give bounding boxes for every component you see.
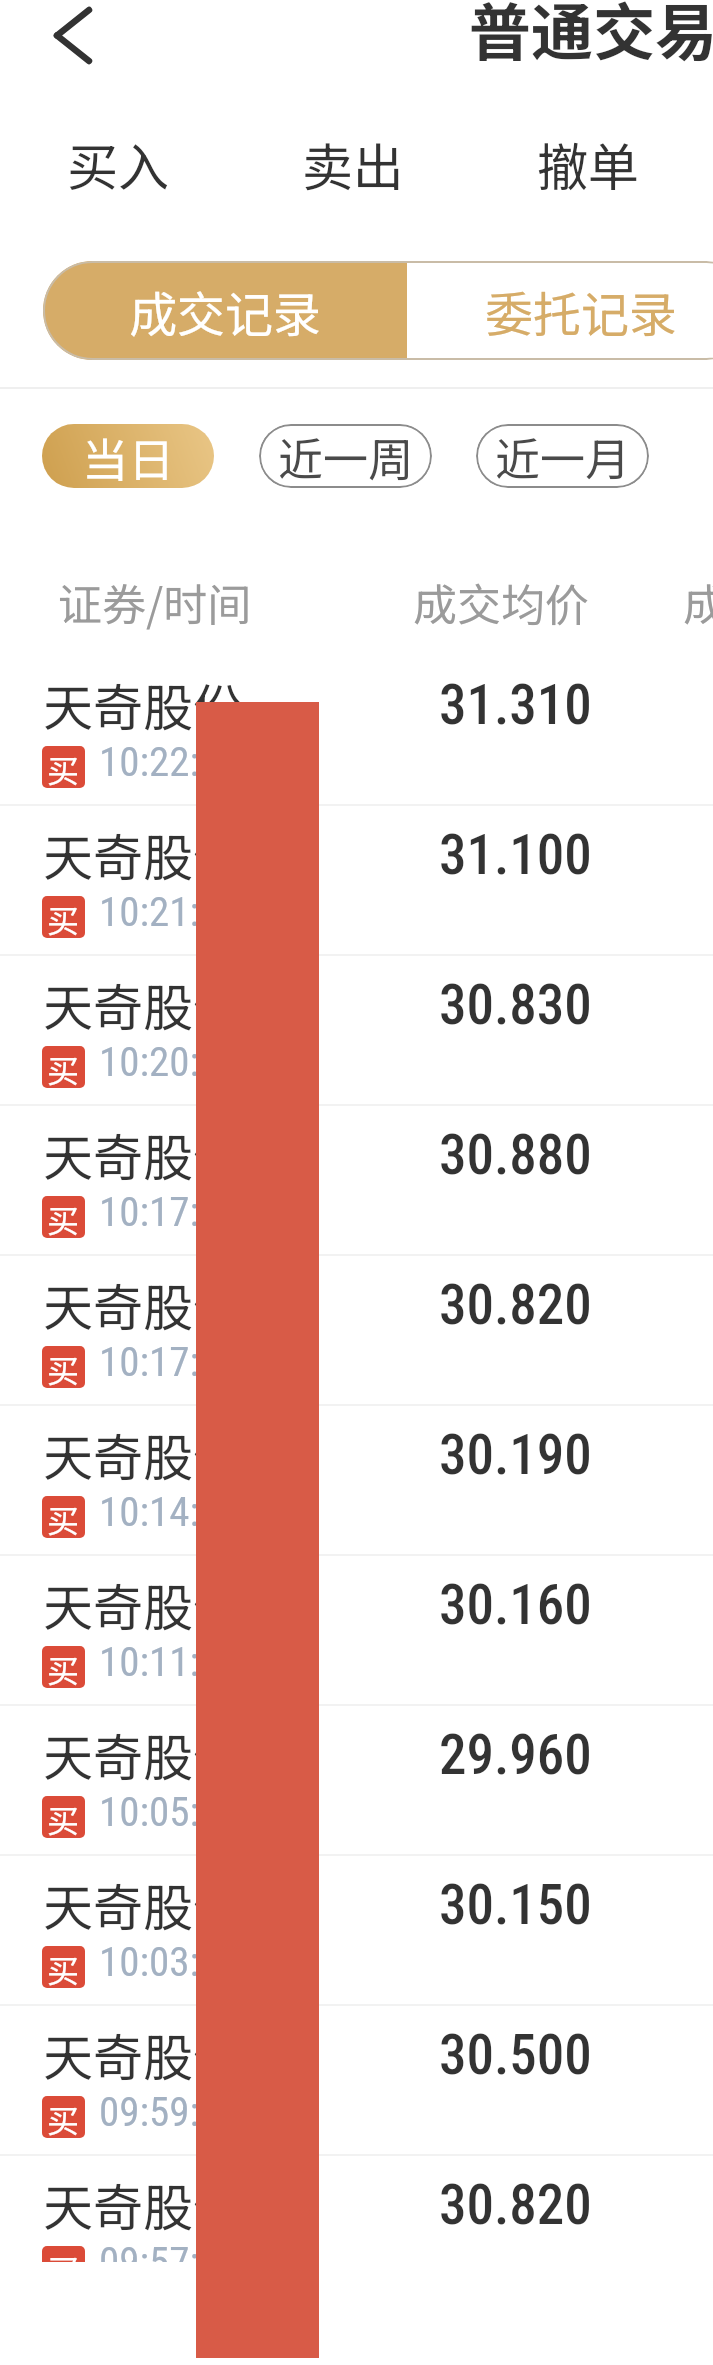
- staticText: 10:17:: [99, 1188, 200, 1236]
- staticText: 30.190: [439, 1423, 592, 1487]
- staticText: 30.880: [439, 1123, 592, 1187]
- staticText: 10:22:: [99, 738, 200, 786]
- staticText: 天奇股份: [43, 1418, 243, 1490]
- staticText: 30.820: [439, 1273, 592, 1337]
- staticText: 10:14:: [99, 1488, 200, 1536]
- staticText: 成交记录: [129, 276, 322, 346]
- button[interactable]: 撤单: [471, 109, 706, 219]
- button[interactable]: 天奇股份: [0, 1706, 713, 1856]
- staticText: 10:21:: [99, 888, 200, 936]
- staticText: 10:11:: [99, 1638, 200, 1686]
- button[interactable]: 天奇股份: [0, 1856, 713, 2006]
- staticText: 普通交易: [469, 0, 713, 73]
- button[interactable]: 委托记录: [407, 261, 713, 360]
- staticText: 买: [47, 896, 80, 938]
- button[interactable]: 天奇股份: [0, 1556, 713, 1706]
- staticText: 买: [47, 1046, 80, 1088]
- staticText: 卖出: [302, 127, 405, 201]
- staticText: 买: [47, 1946, 80, 1988]
- button[interactable]: 天奇股份: [0, 956, 713, 1106]
- staticText: 30.500: [439, 2023, 592, 2087]
- staticText: 天奇股份: [43, 1868, 243, 1940]
- button[interactable]: 天奇股份: [0, 1406, 713, 1556]
- staticText: 30.830: [439, 973, 592, 1037]
- staticText: 天奇股份: [43, 2018, 243, 2090]
- staticText: 买: [47, 1796, 80, 1838]
- staticText: 当日: [82, 424, 174, 488]
- button[interactable]: Back: [0, 0, 110, 80]
- staticText: 天奇股份: [43, 1718, 243, 1790]
- button[interactable]: 成交记录: [43, 261, 407, 360]
- staticText: 近一周: [278, 424, 414, 488]
- staticText: 10:03:: [99, 1938, 200, 1986]
- staticText: 买: [47, 1646, 80, 1688]
- button[interactable]: 天奇股份: [0, 1256, 713, 1406]
- staticText: 天奇股份: [43, 818, 243, 890]
- staticText: 10:17:: [99, 1338, 200, 1386]
- staticText: 29.960: [439, 1723, 592, 1787]
- staticText: 买: [47, 746, 80, 788]
- button[interactable]: 天奇股份: [0, 806, 713, 956]
- staticText: 委托记录: [485, 276, 678, 346]
- button[interactable]: 当日: [42, 424, 214, 488]
- staticText: 证券/时间: [58, 570, 252, 634]
- staticText: 30.820: [439, 2173, 592, 2237]
- staticText: 买: [47, 1196, 80, 1238]
- button[interactable]: 天奇股份: [0, 2006, 713, 2156]
- button[interactable]: 买入: [0, 109, 236, 219]
- button[interactable]: 天奇股份: [0, 656, 713, 806]
- staticText: 成交均价: [413, 570, 589, 634]
- staticText: 30.150: [439, 1873, 592, 1937]
- staticText: 天奇股份: [43, 668, 243, 740]
- button[interactable]: 天奇股份: [0, 2156, 713, 2306]
- staticText: 10:20:: [99, 1038, 200, 1086]
- button[interactable]: 近一周: [259, 424, 432, 488]
- staticText: 买入: [67, 127, 170, 201]
- staticText: 买: [47, 2246, 80, 2288]
- staticText: 近一月: [495, 424, 631, 488]
- staticText: 31.100: [439, 823, 592, 887]
- staticText: 10:05:: [99, 1788, 200, 1836]
- staticText: 天奇股份: [43, 968, 243, 1040]
- staticText: 撤单: [537, 127, 640, 201]
- staticText: 30.160: [439, 1573, 592, 1637]
- staticText: 买: [47, 1496, 80, 1538]
- staticText: 天奇股份: [43, 1268, 243, 1340]
- staticText: 天奇股份: [43, 1568, 243, 1640]
- staticText: 09:59:: [99, 2088, 200, 2136]
- staticText: 天奇股份: [43, 1118, 243, 1190]
- staticText: 成交数量: [683, 570, 713, 634]
- button[interactable]: 卖出: [236, 109, 471, 219]
- button[interactable]: 天奇股份: [0, 1106, 713, 1256]
- staticText: 天奇股份: [43, 2168, 243, 2240]
- staticText: 09:57:: [99, 2238, 200, 2286]
- staticText: 买: [47, 2096, 80, 2138]
- staticText: 买: [47, 1346, 80, 1388]
- staticText: 31.310: [439, 673, 592, 737]
- button[interactable]: 近一月: [476, 424, 649, 488]
